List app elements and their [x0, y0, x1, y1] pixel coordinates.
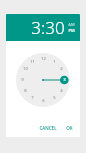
staticText: 8 [24, 88, 27, 94]
button[interactable]: CANCEL [36, 123, 60, 133]
staticText: 3 [63, 77, 66, 83]
staticText: PM [68, 28, 75, 33]
staticText: 2 [60, 66, 63, 72]
staticText: AM [68, 22, 75, 27]
staticText: 3:30 [31, 16, 65, 39]
staticText: 1 [53, 59, 56, 65]
button[interactable]: AM [68, 22, 75, 33]
staticText: 4 [60, 88, 63, 94]
staticText: 7 [31, 95, 34, 101]
staticText: OK [66, 125, 73, 131]
button[interactable]: OK [63, 123, 76, 133]
button[interactable]: 1 [16, 53, 70, 107]
staticText: 5 [53, 95, 56, 101]
staticText: 6 [42, 98, 45, 104]
staticText: 10 [23, 66, 28, 72]
staticText: 12 [41, 56, 46, 62]
staticText: CANCEL [39, 125, 57, 131]
staticText: 11 [30, 59, 35, 65]
staticText: 9 [21, 77, 24, 83]
button[interactable]: 3:30 [31, 16, 65, 39]
